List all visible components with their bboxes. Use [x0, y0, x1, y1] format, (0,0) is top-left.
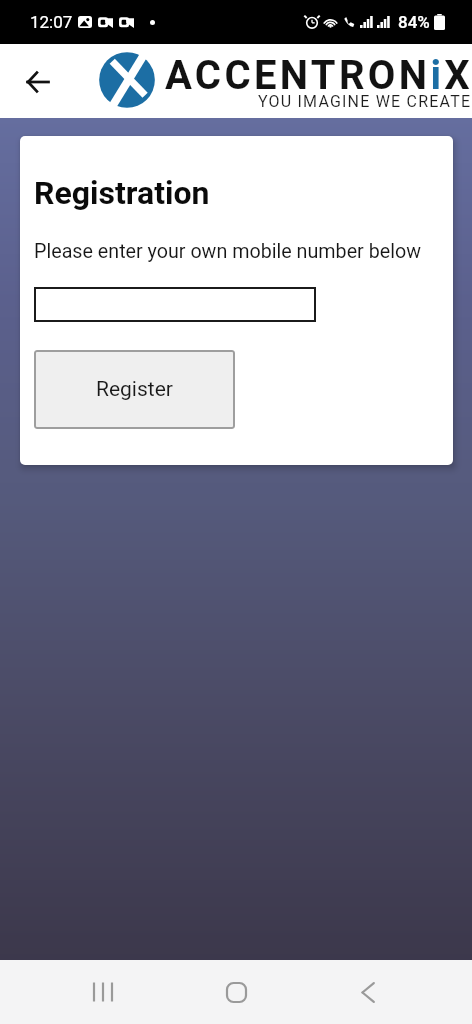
- button[interactable]: Recent apps: [79, 966, 131, 1018]
- button[interactable]: Register: [34, 350, 235, 429]
- staticText: YOU IMAGINE WE CREATE: [258, 92, 472, 111]
- button[interactable]: Mobile number field: [34, 287, 316, 322]
- staticText: 12:07: [30, 12, 73, 32]
- button[interactable]: Back: [15, 59, 60, 104]
- staticText: Please enter your own mobile number belo…: [34, 240, 421, 263]
- button[interactable]: Home: [210, 966, 262, 1018]
- staticText: Register: [96, 377, 173, 402]
- button[interactable]: Back: [341, 966, 393, 1018]
- staticText: Registration: [34, 174, 210, 212]
- button[interactable]: Accentronix home: [98, 51, 156, 109]
- staticText: ACCENTRONiX: [165, 52, 472, 99]
- staticText: 84%: [398, 12, 430, 32]
